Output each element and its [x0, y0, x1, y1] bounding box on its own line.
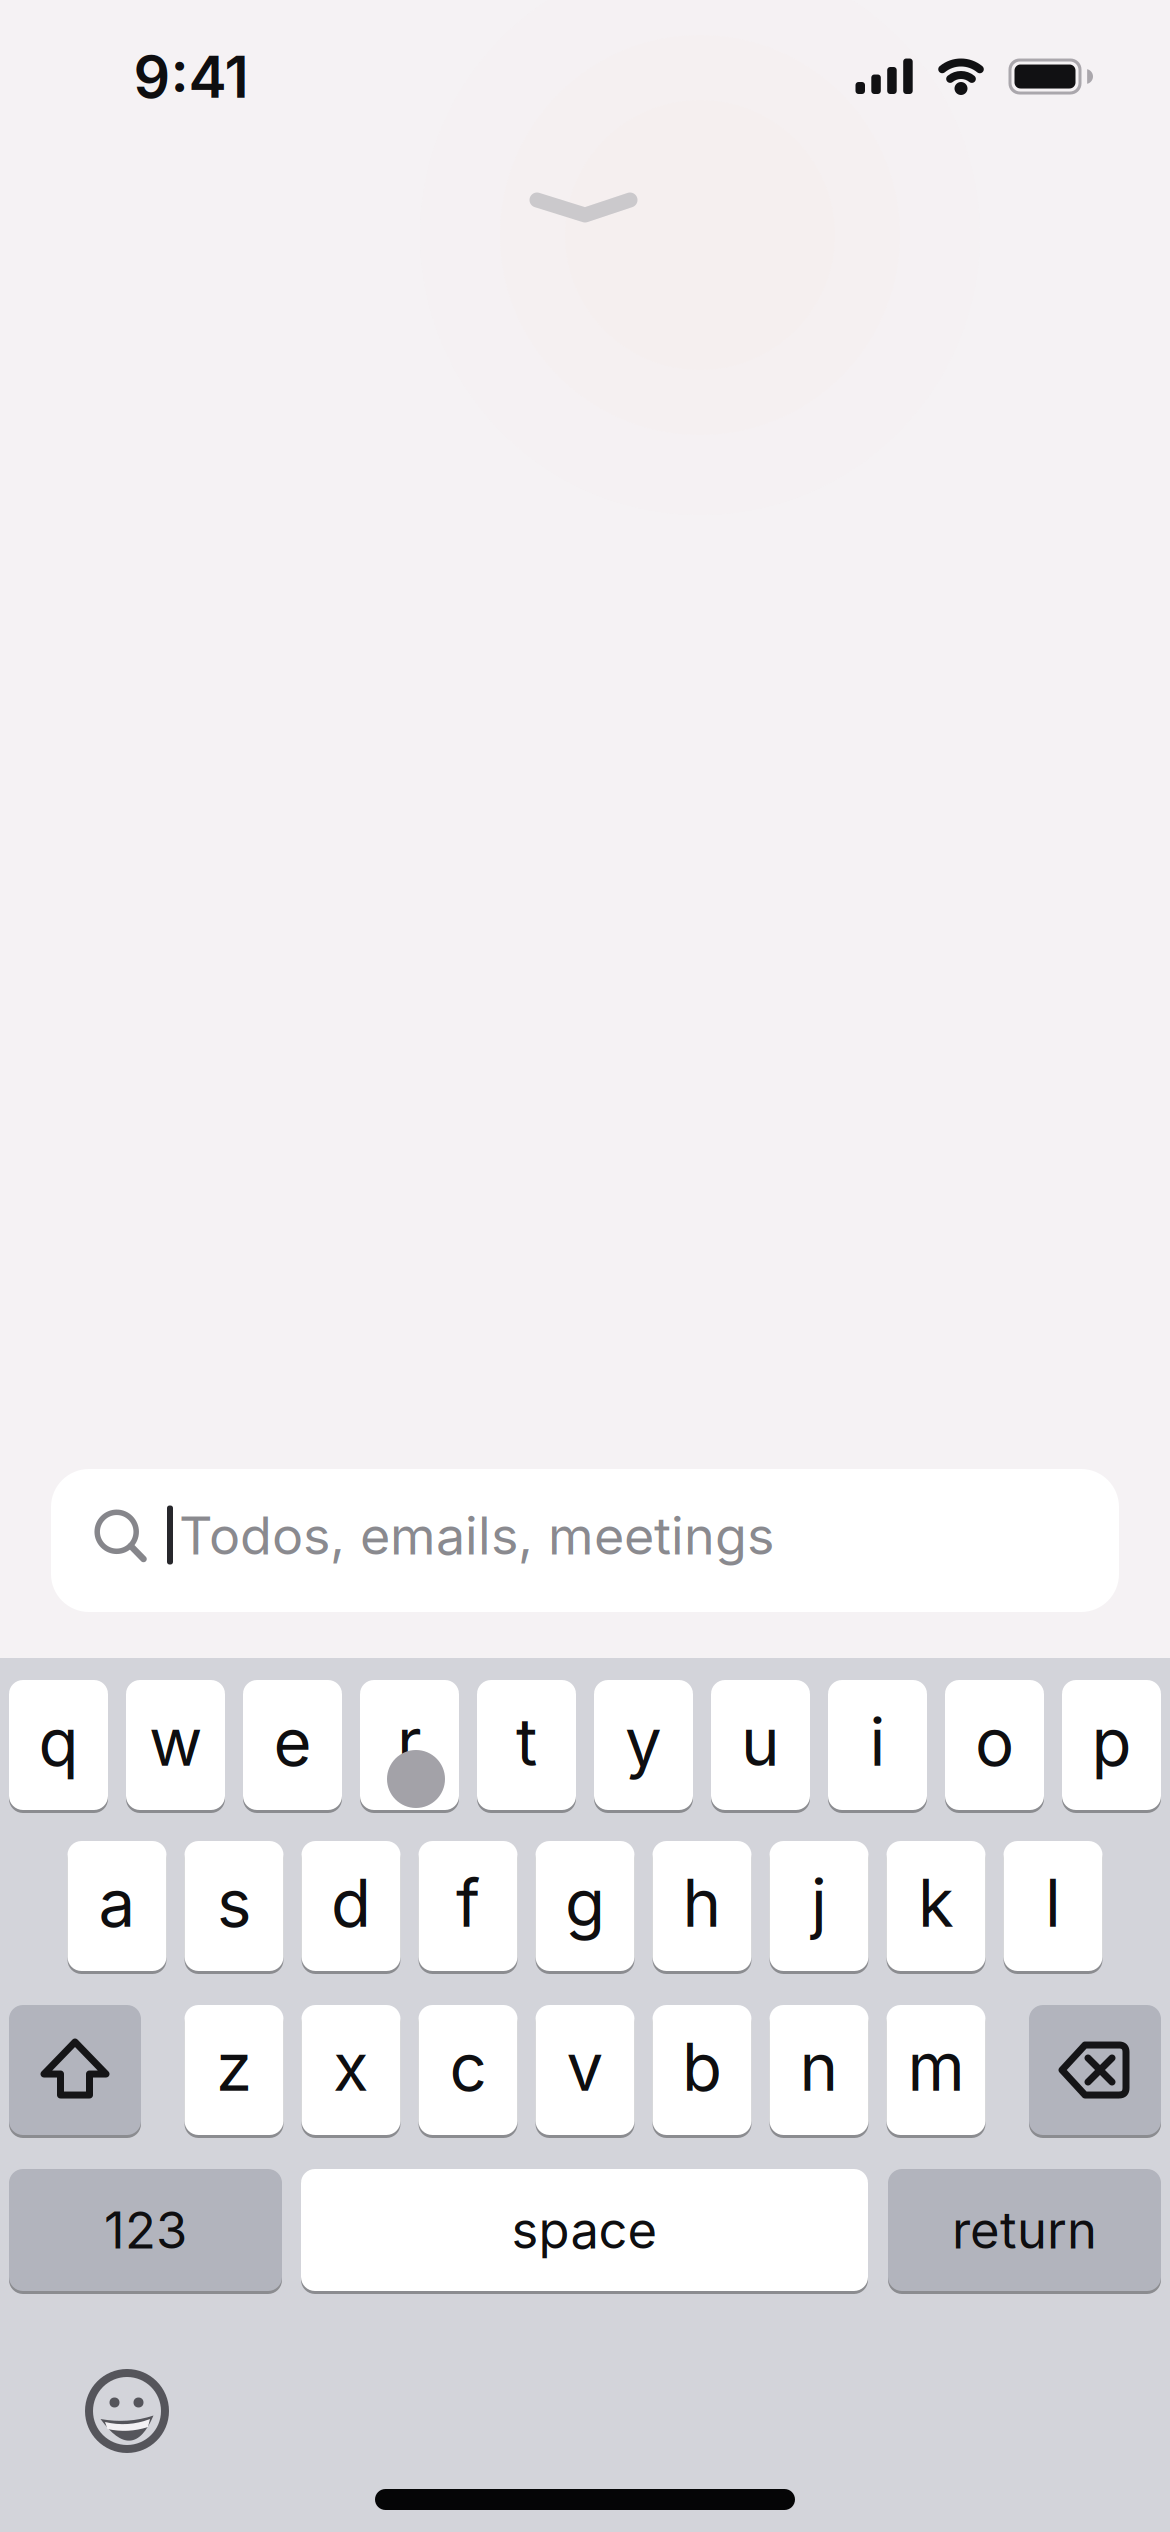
button[interactable] [1029, 2005, 1161, 2135]
button[interactable]: a [67, 1841, 166, 1971]
button[interactable]: f [418, 1841, 517, 1971]
staticText: b [682, 2028, 722, 2106]
button[interactable]: y [594, 1680, 693, 1810]
staticText: space [511, 2200, 657, 2260]
button[interactable]: w [126, 1680, 225, 1810]
staticText: 123 [104, 2200, 187, 2260]
button[interactable]: j [769, 1841, 868, 1971]
staticText: z [216, 2028, 252, 2106]
staticText: e [273, 1703, 311, 1781]
staticText: w [149, 1703, 202, 1781]
button[interactable]: r [360, 1680, 459, 1810]
button[interactable]: q [9, 1680, 108, 1810]
staticText: p [1091, 1703, 1131, 1781]
staticText: y [625, 1703, 662, 1781]
staticText: g [565, 1864, 605, 1942]
staticText: d [331, 1864, 371, 1942]
button[interactable]: v [535, 2005, 634, 2135]
button[interactable]: m [886, 2005, 985, 2135]
button[interactable]: p [1062, 1680, 1161, 1810]
button[interactable]: d [301, 1841, 400, 1971]
staticText: Todos, emails, meetings [179, 1505, 774, 1566]
staticText: t [516, 1703, 537, 1781]
staticText: j [811, 1864, 827, 1942]
button[interactable]: 123 [9, 2169, 282, 2291]
button[interactable]: l [1003, 1841, 1102, 1971]
staticText: h [682, 1864, 721, 1942]
staticText: l [1045, 1864, 1061, 1942]
button[interactable]: z [184, 2005, 283, 2135]
staticText: r [397, 1703, 422, 1781]
button[interactable]: e [243, 1680, 342, 1810]
button[interactable]: i [828, 1680, 927, 1810]
staticText: q [38, 1703, 78, 1781]
button[interactable]: x [301, 2005, 400, 2135]
staticText: i [869, 1703, 885, 1781]
button[interactable]: g [535, 1841, 634, 1971]
button[interactable]: h [652, 1841, 751, 1971]
staticText: k [918, 1864, 954, 1942]
button[interactable]: space [301, 2169, 868, 2291]
button[interactable]: c [418, 2005, 517, 2135]
staticText: m [907, 2028, 964, 2106]
button[interactable]: Todos, emails, meetings [51, 1469, 1119, 1612]
button[interactable]: return [888, 2169, 1161, 2291]
staticText: return [952, 2200, 1097, 2260]
button[interactable] [77, 2361, 177, 2461]
staticText: a [98, 1864, 135, 1942]
button[interactable]: s [184, 1841, 283, 1971]
button[interactable]: n [769, 2005, 868, 2135]
staticText: v [566, 2028, 603, 2106]
staticText: n [799, 2028, 838, 2106]
staticText: s [217, 1864, 251, 1942]
button[interactable] [524, 182, 644, 232]
staticText: x [333, 2028, 369, 2106]
button[interactable]: b [652, 2005, 751, 2135]
staticText: c [449, 2028, 486, 2106]
staticText: f [456, 1864, 480, 1942]
button[interactable]: k [886, 1841, 985, 1971]
staticText: o [975, 1703, 1014, 1781]
staticText: u [741, 1703, 780, 1781]
button[interactable]: t [477, 1680, 576, 1810]
button[interactable]: u [711, 1680, 810, 1810]
button[interactable] [9, 2005, 141, 2135]
button[interactable]: o [945, 1680, 1044, 1810]
staticText: 9:41 [133, 43, 248, 111]
